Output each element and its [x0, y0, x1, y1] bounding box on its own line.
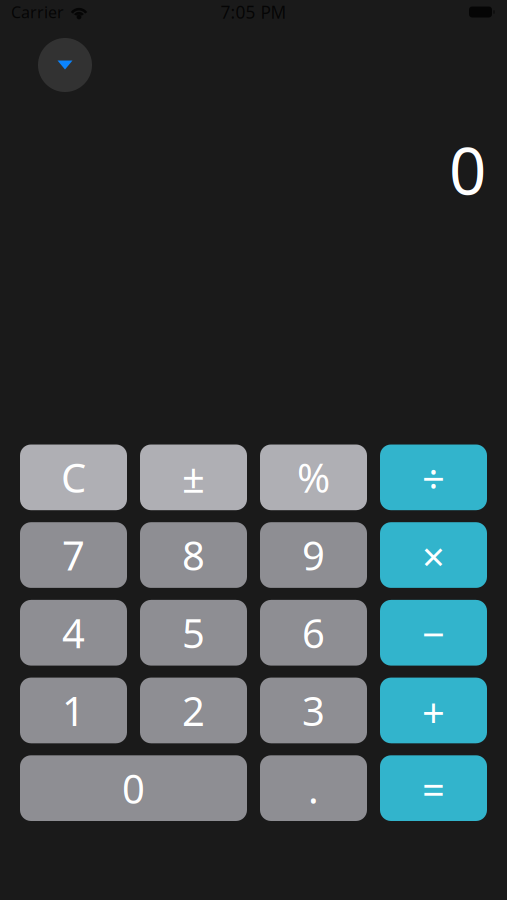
button[interactable]: 8 [140, 522, 247, 588]
staticText: 2 [182, 684, 205, 737]
button[interactable]: ± [140, 444, 247, 510]
button[interactable]: Collapse [38, 38, 92, 92]
staticText: 1 [62, 684, 85, 737]
staticText: ÷ [422, 452, 445, 505]
button[interactable]: 1 [20, 678, 127, 743]
button[interactable]: . [260, 755, 367, 821]
button[interactable]: % [260, 444, 367, 510]
staticText: 7:05 PM [220, 0, 286, 23]
staticText: 5 [182, 606, 205, 659]
button[interactable]: 5 [140, 600, 247, 666]
staticText: + [422, 685, 445, 738]
staticText: 0 [122, 762, 145, 815]
staticText: ± [182, 451, 205, 504]
button[interactable]: 7 [20, 522, 127, 588]
staticText: . [308, 762, 319, 815]
staticText: C [61, 451, 86, 504]
staticText: − [422, 607, 445, 660]
staticText: 8 [182, 528, 205, 582]
button[interactable]: = [380, 755, 487, 821]
staticText: 3 [302, 684, 325, 737]
staticText: = [422, 763, 445, 816]
button[interactable]: ÷ [380, 444, 487, 510]
button[interactable]: C [20, 444, 127, 510]
staticText: % [297, 451, 330, 504]
button[interactable]: 2 [140, 678, 247, 743]
button[interactable]: 9 [260, 522, 367, 588]
button[interactable]: × [380, 522, 487, 588]
staticText: 4 [62, 606, 85, 659]
staticText: × [422, 529, 445, 583]
staticText: 6 [302, 606, 325, 659]
button[interactable]: 6 [260, 600, 367, 666]
button[interactable]: 3 [260, 678, 367, 743]
staticText: 0 [449, 126, 486, 213]
button[interactable]: + [380, 678, 487, 743]
staticText: Carrier [11, 1, 64, 23]
button[interactable]: 0 [20, 755, 247, 821]
button[interactable]: − [380, 600, 487, 666]
staticText: 7 [62, 528, 85, 582]
staticText: 9 [302, 528, 325, 582]
button[interactable]: 4 [20, 600, 127, 666]
